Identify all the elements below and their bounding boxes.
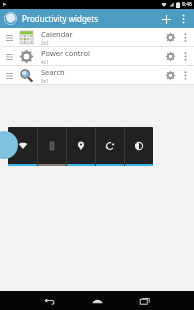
button[interactable]: Bluetooth: [38, 127, 66, 166]
button[interactable]: Reorder Power control: [0, 47, 194, 65]
button[interactable]: Wi-Fi: [8, 127, 37, 166]
button[interactable]: Reorder Search: [4, 70, 15, 81]
button[interactable]: Power control settings: [162, 48, 178, 64]
button[interactable]: Calendar more options: [178, 30, 192, 44]
button[interactable]: Reorder Power control: [4, 51, 15, 62]
staticText: Power control: [41, 48, 90, 58]
button[interactable]: Back: [32, 291, 66, 310]
staticText: 4x1: [41, 59, 49, 65]
button[interactable]: Recent apps: [128, 291, 162, 310]
button[interactable]: Reorder Calendar: [4, 32, 15, 43]
staticText: Productivity widgets: [22, 13, 99, 24]
button[interactable]: More options: [176, 12, 190, 26]
button[interactable]: Add widget: [158, 11, 174, 27]
button[interactable]: Home: [80, 291, 114, 310]
staticText: 2x2: [41, 40, 49, 46]
button[interactable]: Reorder Search: [0, 66, 194, 84]
staticText: 3x1: [41, 78, 49, 84]
button[interactable]: Brightness: [125, 127, 153, 166]
button[interactable]: Calendar settings: [162, 29, 178, 45]
button[interactable]: Power control more options: [178, 49, 192, 63]
button[interactable]: App icon: [4, 12, 17, 25]
button[interactable]: Search more options: [178, 68, 192, 82]
staticText: Search: [41, 67, 65, 77]
button[interactable]: Location: [67, 127, 95, 166]
button[interactable]: Reorder Calendar: [0, 28, 194, 46]
staticText: 8:46: [182, 1, 192, 8]
staticText: Calendar: [41, 29, 73, 39]
button[interactable]: Sync: [96, 127, 124, 166]
button[interactable]: Search settings: [162, 67, 178, 83]
button[interactable]: Wi-Fi: [8, 127, 153, 166]
